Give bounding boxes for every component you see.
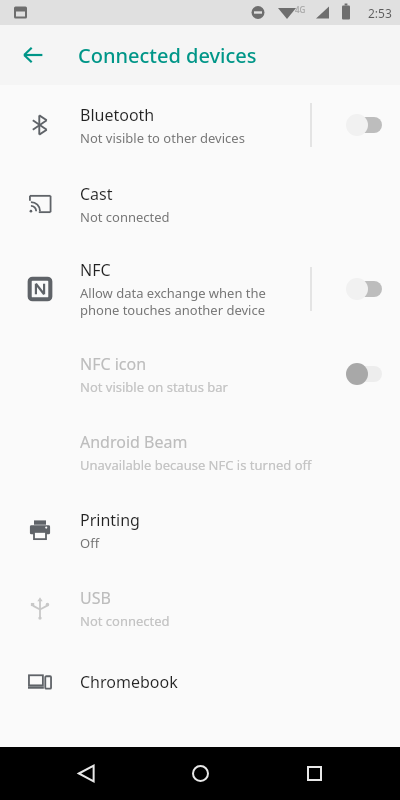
staticText: Printing: [80, 509, 140, 531]
staticText: Not connected: [80, 612, 170, 630]
button[interactable]: NFC icon toggle: [310, 335, 400, 413]
staticText: 2:53: [368, 5, 392, 21]
button[interactable]: NFC: [0, 243, 400, 335]
staticText: Off: [80, 534, 100, 552]
staticText: Cast: [80, 183, 113, 205]
button[interactable]: NFC toggle: [310, 243, 400, 335]
button[interactable]: Bluetooth toggle: [310, 85, 400, 165]
staticText: Unavailable because NFC is turned off: [80, 456, 312, 474]
staticText: Not visible on status bar: [80, 378, 228, 396]
staticText: Connected devices: [78, 42, 257, 69]
staticText: Not connected: [80, 208, 170, 226]
staticText: Allow data exchange when the phone touch…: [80, 284, 266, 319]
button[interactable]: Back: [58, 747, 114, 800]
staticText: Chromebook: [80, 671, 178, 693]
staticText: Not visible to other devices: [80, 129, 245, 147]
button[interactable]: Recents: [286, 747, 342, 800]
button[interactable]: NFC icon: [0, 335, 400, 413]
staticText: USB: [80, 587, 111, 609]
staticText: Bluetooth: [80, 104, 155, 126]
button[interactable]: Bluetooth: [0, 85, 400, 165]
button[interactable]: Home: [172, 747, 228, 800]
button[interactable]: USB: [0, 569, 400, 647]
staticText: NFC icon: [80, 353, 147, 375]
button[interactable]: Chromebook: [0, 647, 400, 717]
button[interactable]: Cast: [0, 165, 400, 243]
staticText: NFC: [80, 259, 111, 281]
button[interactable]: Back: [9, 31, 57, 79]
button[interactable]: Android Beam: [0, 413, 400, 491]
button[interactable]: Printing: [0, 491, 400, 569]
staticText: 4G: [295, 4, 306, 15]
staticText: Android Beam: [80, 431, 188, 453]
